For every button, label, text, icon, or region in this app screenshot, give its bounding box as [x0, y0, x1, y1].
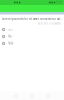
staticText: sed do eiusmod [38, 22, 61, 25]
staticText: Yes [8, 28, 12, 31]
staticText: □ [46, 93, 50, 98]
staticText: ◁ [13, 93, 16, 98]
staticText: ○ [30, 93, 33, 98]
button[interactable]: Home [30, 93, 33, 98]
button[interactable]: Recents [46, 93, 50, 98]
staticText: 9:41 [56, 1, 63, 4]
button[interactable]: Back [13, 93, 16, 98]
staticText: No [8, 35, 12, 38]
button[interactable]: Yes [2, 26, 62, 33]
button[interactable]: N/A [2, 40, 62, 47]
staticText: Lorem ipsum dolor sit amet consectetur a… [2, 17, 62, 21]
staticText: N/A [8, 42, 13, 45]
button[interactable]: No [2, 33, 62, 40]
